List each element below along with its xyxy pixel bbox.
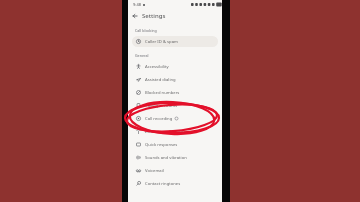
- button[interactable]: Assisted dialing: [128, 73, 222, 86]
- staticText: Settings: [142, 12, 166, 20]
- button[interactable]: Accessibility: [128, 60, 222, 73]
- button[interactable]: Back: [128, 9, 222, 23]
- button[interactable]: Voicemail: [128, 164, 222, 177]
- staticText: Call blocking: [135, 28, 157, 33]
- button[interactable]: Back: [128, 9, 142, 23]
- button[interactable]: Calling accounts: [128, 99, 222, 112]
- button[interactable]: Quick responses: [128, 138, 222, 151]
- staticText: 9:48: [133, 2, 141, 7]
- staticText: Caller ID & spam: [145, 39, 178, 45]
- staticText: Contact ringtones: [145, 181, 181, 187]
- staticText: Accessibility: [145, 64, 169, 70]
- staticText: Voicemail: [145, 168, 164, 174]
- button[interactable]: Contact ringtones: [128, 177, 222, 190]
- button[interactable]: Call recording: [128, 112, 222, 125]
- staticText: Blocked numbers: [145, 90, 180, 96]
- button[interactable]: Incoming call gesture: [128, 125, 222, 138]
- staticText: Assisted dialing: [145, 77, 176, 83]
- button[interactable]: Blocked numbers: [128, 86, 222, 99]
- staticText: Quick responses: [145, 142, 178, 148]
- staticText: Calling accounts: [145, 103, 178, 109]
- staticText: Call recording: [145, 116, 173, 122]
- staticText: Incoming call gesture: [145, 129, 188, 135]
- button[interactable]: Caller ID & spam: [132, 36, 218, 47]
- button[interactable]: Sounds and vibration: [128, 151, 222, 164]
- staticText: Sounds and vibration: [145, 155, 187, 161]
- staticText: General: [135, 53, 149, 58]
